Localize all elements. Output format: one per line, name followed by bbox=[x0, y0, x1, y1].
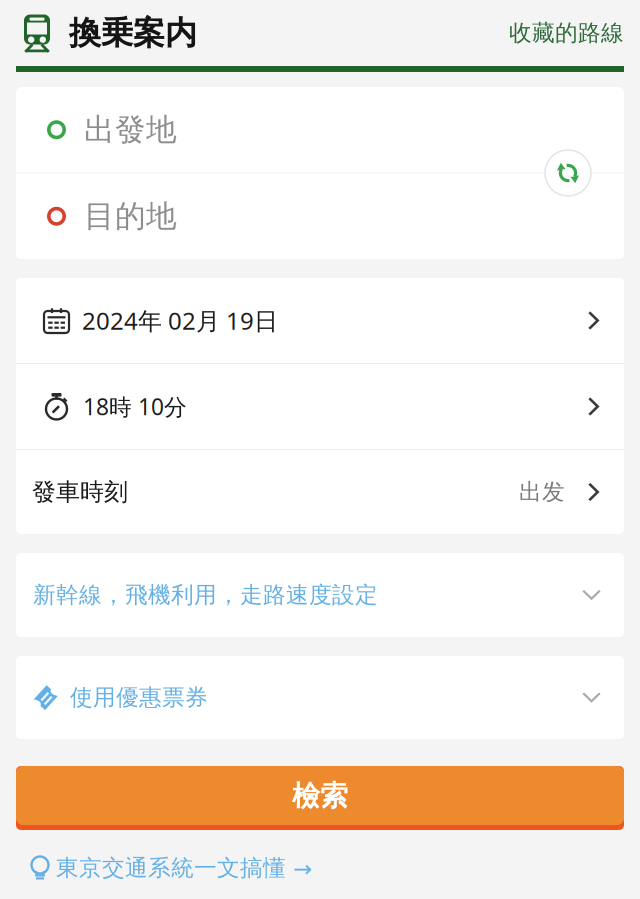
button[interactable]: 18時 10分 bbox=[16, 364, 624, 449]
staticText: 東京交通系統一文搞懂 → bbox=[56, 854, 312, 882]
staticText: 2024年 02月 19日 bbox=[82, 305, 278, 336]
button[interactable]: 2024年 02月 19日 bbox=[16, 278, 624, 363]
staticText: 使用優惠票券 bbox=[70, 684, 208, 711]
staticText: 檢索 bbox=[292, 779, 348, 813]
button[interactable]: 檢索 bbox=[16, 766, 624, 830]
staticText: 收藏的路線 bbox=[509, 19, 624, 47]
staticText: 出发 bbox=[519, 478, 565, 506]
button[interactable]: 收藏的路線 bbox=[509, 19, 640, 47]
staticText: 新幹線，飛機利用，走路速度設定 bbox=[33, 581, 378, 609]
button[interactable]: 目的地 bbox=[16, 173, 624, 259]
button[interactable]: 發車時刻 bbox=[16, 450, 624, 534]
staticText: 出發地 bbox=[84, 111, 177, 149]
staticText: 換乗案内 bbox=[69, 13, 197, 53]
staticText: 發車時刻 bbox=[32, 477, 128, 507]
button[interactable]: 新幹線，飛機利用，走路速度設定 bbox=[16, 553, 624, 637]
button[interactable]: Swap departure and destination bbox=[545, 150, 591, 196]
button[interactable]: 出發地 bbox=[16, 87, 624, 172]
staticText: 檢索 bbox=[292, 781, 348, 815]
staticText: 目的地 bbox=[84, 197, 177, 235]
button[interactable]: 使用優惠票券 bbox=[16, 656, 624, 739]
button[interactable]: 東京交通系統一文搞懂 → bbox=[0, 846, 640, 890]
staticText: 18時 10分 bbox=[83, 391, 187, 421]
